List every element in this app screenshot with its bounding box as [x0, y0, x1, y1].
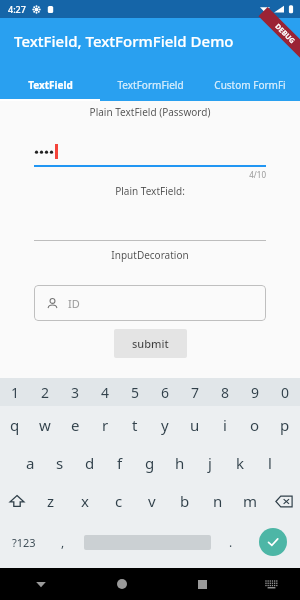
staticText: ?123 [12, 535, 36, 550]
button[interactable]: c [102, 482, 135, 520]
button[interactable]: u [180, 406, 210, 444]
button[interactable]: TextFormField [100, 69, 200, 101]
staticText: 7 [191, 383, 200, 402]
button[interactable]: y [150, 406, 180, 444]
button[interactable]: w [30, 406, 60, 444]
button[interactable]: i [210, 406, 240, 444]
button[interactable]: f [105, 444, 135, 482]
button[interactable]: 5 [120, 378, 150, 406]
button[interactable]: k [225, 444, 255, 482]
staticText: submit [132, 336, 169, 351]
button[interactable]: p [270, 406, 300, 444]
button[interactable]: Recent apps [162, 568, 243, 600]
staticText: 4:27 [8, 3, 26, 15]
staticText: h [175, 453, 185, 473]
button[interactable]: Enter [246, 520, 300, 564]
staticText: DEBUG [273, 22, 297, 46]
staticText: b [180, 491, 190, 511]
button[interactable]: h [165, 444, 195, 482]
staticText: u [190, 415, 200, 435]
staticText: 4/10 [34, 169, 266, 180]
button[interactable]: Space [78, 520, 216, 564]
button[interactable]: . [216, 520, 246, 564]
staticText: k [236, 453, 245, 473]
staticText: TextField, TextFormField Demo [14, 31, 234, 51]
button[interactable]: 6 [150, 378, 180, 406]
staticText: i [223, 415, 227, 435]
staticText: 8 [221, 383, 230, 402]
button[interactable]: Home [81, 568, 162, 600]
button[interactable]: 4/10 [34, 140, 266, 180]
staticText: 0 [281, 383, 290, 402]
button[interactable]: Custom FormFi [200, 69, 300, 101]
button[interactable]: ID [34, 285, 266, 321]
staticText: q [10, 415, 20, 435]
staticText: 1 [11, 383, 20, 402]
staticText: v [148, 491, 156, 511]
staticText: o [250, 415, 260, 435]
button[interactable]: g [135, 444, 165, 482]
staticText: 9 [251, 383, 260, 402]
staticText: 5 [131, 383, 140, 402]
staticText: t [132, 415, 138, 435]
staticText: 6 [161, 383, 170, 402]
staticText: , [61, 534, 65, 550]
button[interactable]: 0 [270, 378, 300, 406]
button[interactable]: Back [0, 568, 81, 600]
staticText: 2 [41, 383, 50, 402]
staticText: 4 [101, 383, 110, 402]
button[interactable]: 2 [30, 378, 60, 406]
staticText: InputDecoration [0, 248, 300, 262]
button[interactable]: t [120, 406, 150, 444]
button[interactable]: e [60, 406, 90, 444]
button[interactable]: n [201, 482, 234, 520]
staticText: ID [68, 296, 80, 311]
staticText: w [39, 415, 51, 435]
staticText: s [56, 453, 64, 473]
button[interactable]: r [90, 406, 120, 444]
staticText: TextFormField [117, 78, 184, 92]
button[interactable]: d [75, 444, 105, 482]
button[interactable]: Backspace [267, 482, 300, 520]
button[interactable]: x [68, 482, 102, 520]
staticText: c [115, 491, 123, 511]
staticText: g [145, 453, 155, 473]
button[interactable]: m [234, 482, 267, 520]
button[interactable]: 3 [60, 378, 90, 406]
button[interactable]: s [45, 444, 75, 482]
button[interactable]: l [255, 444, 285, 482]
staticText: p [280, 415, 290, 435]
staticText: Plain TextField (Password) [0, 105, 300, 119]
staticText: 3 [71, 383, 80, 402]
button[interactable]: Shift [0, 482, 34, 520]
staticText: d [85, 453, 95, 473]
button[interactable]: z [34, 482, 68, 520]
button[interactable]: 8 [210, 378, 240, 406]
button[interactable]: TextField [0, 69, 100, 101]
button[interactable]: j [195, 444, 225, 482]
staticText: m [243, 491, 258, 511]
button[interactable]: , [48, 520, 78, 564]
button[interactable]: ?123 [0, 520, 48, 564]
staticText: r [102, 415, 109, 435]
staticText: z [47, 491, 55, 511]
staticText: x [81, 491, 89, 511]
button[interactable]: v [135, 482, 168, 520]
staticText: TextField [28, 78, 73, 92]
button[interactable]: 9 [240, 378, 270, 406]
button[interactable]: 4 [90, 378, 120, 406]
button[interactable]: q [0, 406, 30, 444]
staticText: e [71, 415, 80, 435]
staticText: Custom FormFi [214, 78, 286, 92]
button[interactable]: 7 [180, 378, 210, 406]
button[interactable]: 1 [0, 378, 30, 406]
staticText: l [268, 453, 272, 473]
button[interactable]: submit [114, 329, 187, 358]
button[interactable]: Switch keyboard [243, 568, 300, 600]
staticText: Plain TextField: [0, 184, 300, 198]
staticText: . [229, 534, 233, 550]
button[interactable]: o [240, 406, 270, 444]
button[interactable]: b [168, 482, 201, 520]
button[interactable]: a [15, 444, 45, 482]
